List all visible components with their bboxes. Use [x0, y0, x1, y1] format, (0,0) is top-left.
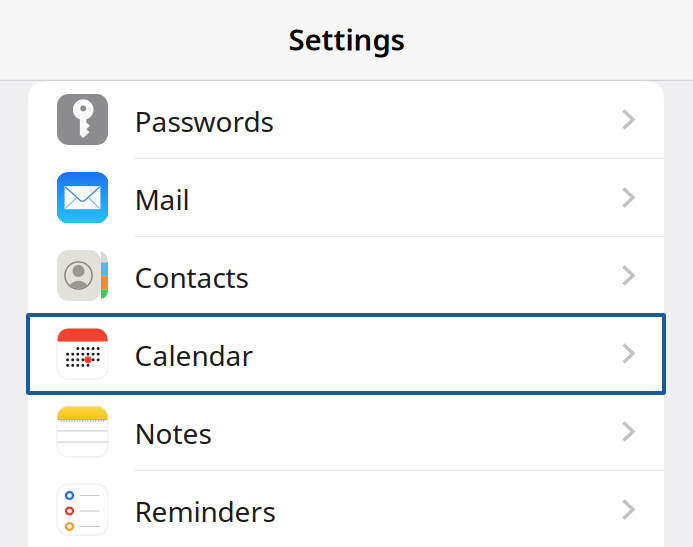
- staticText: Mail: [134, 181, 189, 218]
- staticText: Reminders: [134, 493, 275, 530]
- button[interactable]: Notes: [28, 393, 664, 471]
- staticText: Settings: [288, 19, 404, 58]
- staticText: Notes: [134, 415, 211, 452]
- button[interactable]: Reminders: [28, 471, 664, 547]
- button[interactable]: Calendar: [28, 315, 664, 393]
- staticText: Contacts: [134, 259, 248, 296]
- button[interactable]: Contacts: [28, 237, 664, 315]
- staticText: Passwords: [134, 103, 273, 140]
- button[interactable]: Passwords: [28, 81, 664, 159]
- button[interactable]: Mail: [28, 159, 664, 237]
- staticText: Calendar: [134, 337, 253, 374]
